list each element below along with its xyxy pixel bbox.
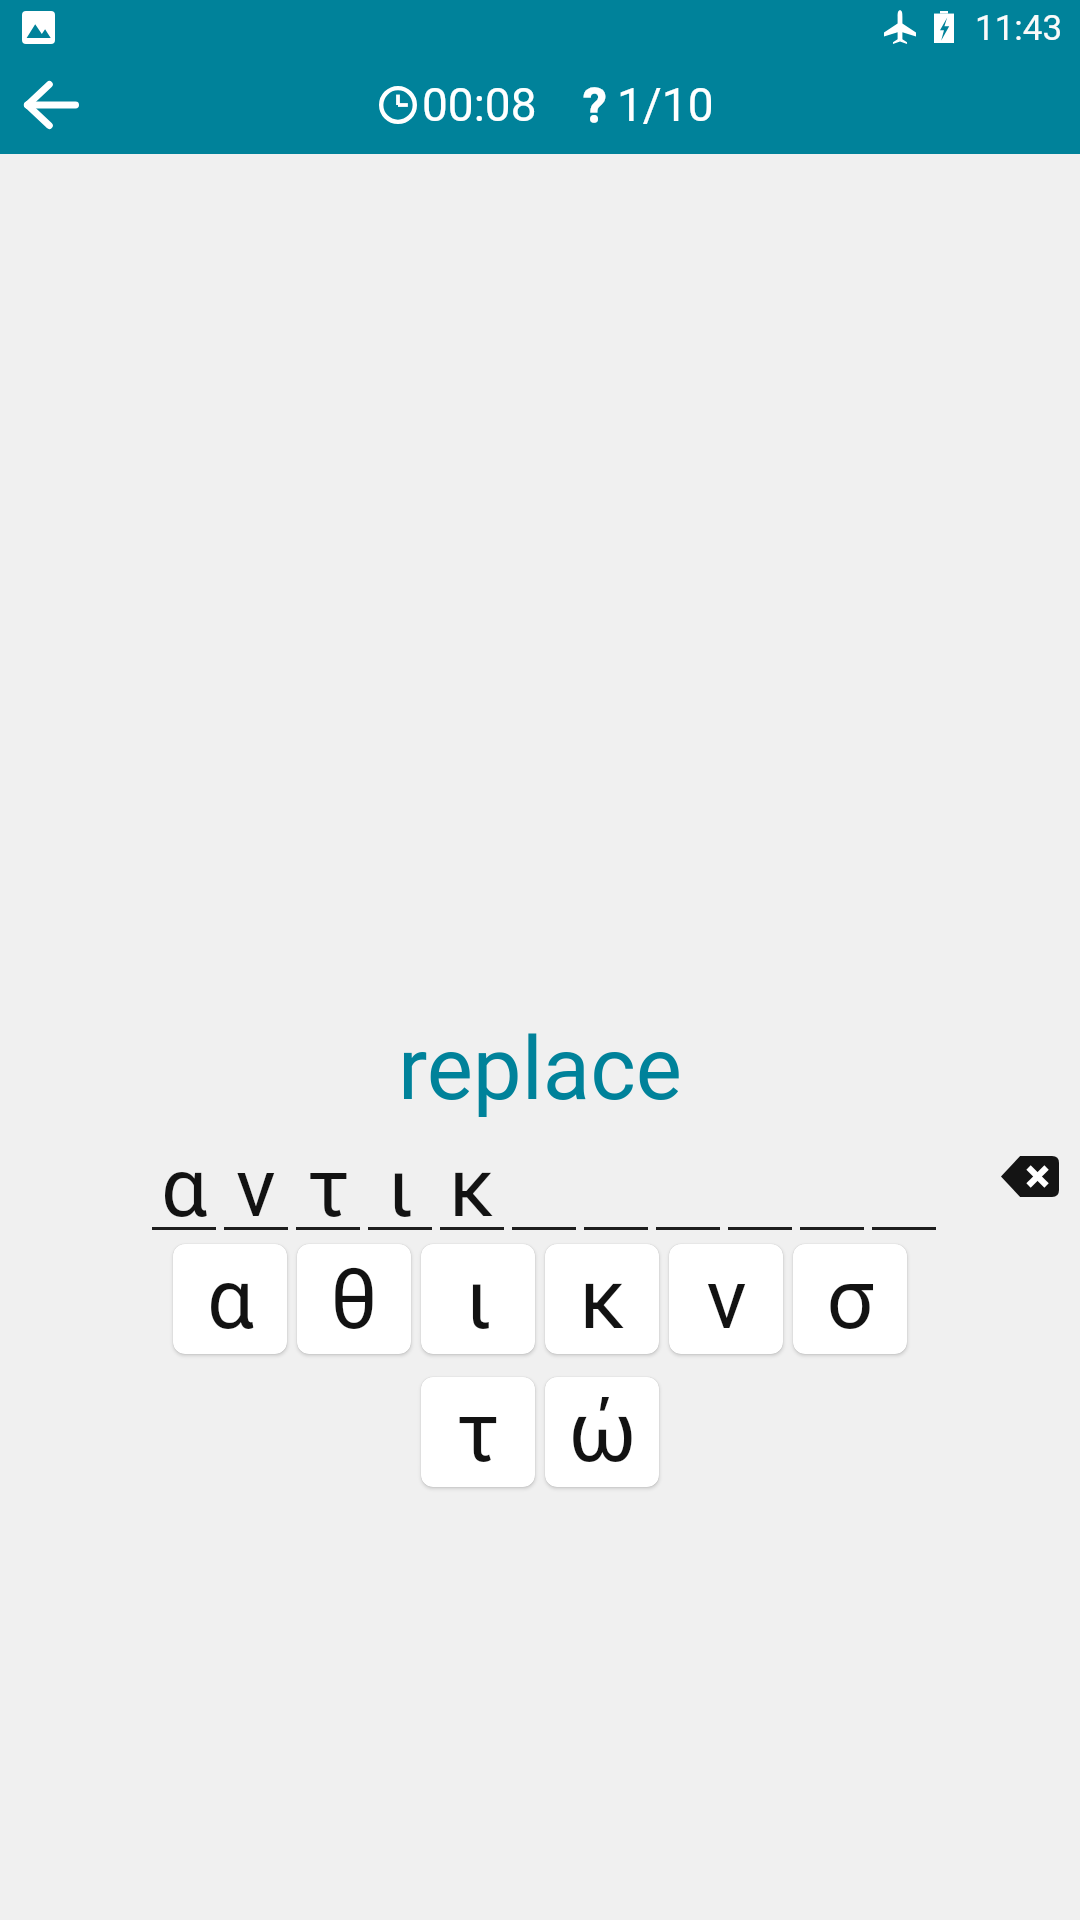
button[interactable]: ι: [421, 1244, 535, 1354]
other: Screenshot: [22, 11, 55, 44]
button[interactable]: ώ: [545, 1377, 659, 1487]
button[interactable]: [728, 1140, 792, 1230]
staticText: α: [161, 1140, 208, 1230]
staticText: 00:08: [422, 78, 537, 132]
staticText: ?: [583, 77, 607, 133]
staticText: α: [207, 1251, 254, 1348]
staticText: τ: [307, 1140, 350, 1230]
button[interactable]: [656, 1140, 720, 1230]
button[interactable]: ν: [669, 1244, 783, 1354]
button[interactable]: [800, 1140, 864, 1230]
button[interactable]: κ: [440, 1140, 504, 1230]
staticText: ν: [706, 1251, 747, 1348]
staticText: replace: [398, 1018, 682, 1120]
staticText: ι: [465, 1251, 492, 1348]
button[interactable]: α: [152, 1140, 216, 1230]
staticText: θ: [330, 1251, 378, 1348]
staticText: ν: [236, 1140, 276, 1230]
button[interactable]: [512, 1140, 576, 1230]
button[interactable]: κ: [545, 1244, 659, 1354]
button[interactable]: θ: [297, 1244, 411, 1354]
staticText: σ: [826, 1251, 874, 1348]
button[interactable]: τ: [421, 1377, 535, 1487]
button[interactable]: ν: [224, 1140, 288, 1230]
button[interactable]: Back: [6, 60, 96, 150]
staticText: 11:43: [975, 8, 1063, 49]
staticText: τ: [456, 1384, 500, 1481]
staticText: ώ: [568, 1384, 637, 1481]
staticText: 1/10: [617, 78, 714, 132]
button[interactable]: [584, 1140, 648, 1230]
button[interactable]: ι: [368, 1140, 432, 1230]
staticText: κ: [449, 1140, 495, 1230]
button[interactable]: [872, 1140, 936, 1230]
button[interactable]: α: [173, 1244, 287, 1354]
button[interactable]: σ: [793, 1244, 907, 1354]
staticText: ι: [387, 1140, 414, 1230]
staticText: κ: [579, 1251, 626, 1348]
button[interactable]: τ: [296, 1140, 360, 1230]
button[interactable]: Backspace: [978, 1131, 1080, 1221]
